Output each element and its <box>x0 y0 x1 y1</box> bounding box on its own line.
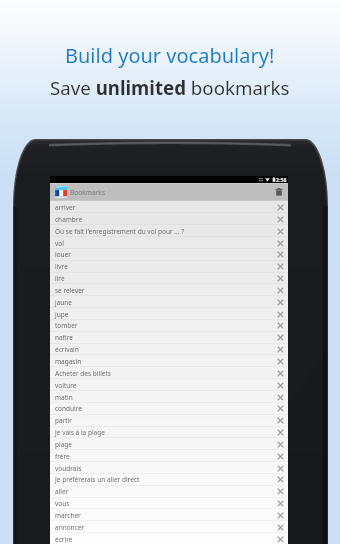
button[interactable]: Remove magasin <box>275 356 286 367</box>
staticText: voudrais <box>55 464 275 473</box>
button[interactable]: arriver <box>50 201 288 213</box>
staticText: écrire <box>55 535 275 544</box>
button[interactable]: Je préférerais un aller direct <box>50 473 288 485</box>
staticText: vol <box>55 239 275 248</box>
button[interactable]: Remove lire <box>275 273 286 284</box>
button[interactable]: annoncer <box>50 521 288 533</box>
staticText: conduire <box>55 404 275 413</box>
staticText: arriver <box>55 203 275 212</box>
button[interactable]: écrivain <box>50 343 288 355</box>
staticText: annoncer <box>55 523 275 532</box>
button[interactable]: vous <box>50 497 288 509</box>
staticText: lire <box>55 274 275 283</box>
button[interactable]: lire <box>50 272 288 284</box>
button[interactable]: Remove naître <box>275 332 286 343</box>
button[interactable]: Remove jaune <box>275 297 286 308</box>
staticText: jupe <box>55 310 275 319</box>
button[interactable]: Remove écrivain <box>275 344 286 355</box>
button[interactable]: Je vais à la plage <box>50 426 288 438</box>
staticText: plage <box>55 440 275 449</box>
staticText: matin <box>55 393 275 402</box>
button[interactable]: plage <box>50 438 288 450</box>
button[interactable]: aller <box>50 485 288 497</box>
button[interactable]: chambre <box>50 213 288 225</box>
staticText: Je vais à la plage <box>55 428 275 437</box>
button[interactable]: frère <box>50 450 288 462</box>
button[interactable]: Remove aller <box>275 486 286 497</box>
button[interactable]: voudrais <box>50 462 288 474</box>
button[interactable]: Remove chambre <box>275 214 286 225</box>
button[interactable]: livre <box>50 260 288 272</box>
staticText: livre <box>55 262 275 271</box>
button[interactable]: Delete all bookmarks <box>272 185 285 198</box>
button[interactable]: tomber <box>50 319 288 331</box>
button[interactable]: App icon <box>54 185 68 199</box>
staticText: Je préférerais un aller direct <box>55 475 275 484</box>
button[interactable]: Remove louer <box>275 249 286 260</box>
button[interactable]: Où se fait l'enregistrement du vol pour … <box>50 225 288 237</box>
button[interactable]: naître <box>50 331 288 343</box>
button[interactable]: Remove jupe <box>275 309 286 320</box>
button[interactable]: louer <box>50 248 288 260</box>
staticText: Acheter des billets <box>55 369 275 378</box>
button[interactable]: Remove livre <box>275 261 286 272</box>
button[interactable]: écrire <box>50 533 288 544</box>
button[interactable]: Remove Je préférerais un aller direct <box>275 474 286 485</box>
button[interactable]: Remove matin <box>275 392 286 403</box>
button[interactable]: Remove se relever <box>275 285 286 296</box>
button[interactable]: Remove annoncer <box>275 522 286 533</box>
button[interactable]: Remove vol <box>275 238 286 249</box>
staticText: marcher <box>55 511 275 520</box>
button[interactable]: conduire <box>50 402 288 414</box>
button[interactable]: Remove vous <box>275 498 286 509</box>
button[interactable]: Remove Je vais à la plage <box>275 427 286 438</box>
staticText: Où se fait l'enregistrement du vol pour … <box>55 227 275 236</box>
staticText: magasin <box>55 357 275 366</box>
staticText: Bookmarks <box>70 188 106 197</box>
button[interactable]: partir <box>50 414 288 426</box>
staticText: vous <box>55 499 275 508</box>
staticText: Save unlimited bookmarks <box>50 75 290 100</box>
button[interactable]: matin <box>50 391 288 403</box>
staticText: Build your vocabulary! <box>65 42 275 69</box>
staticText: se relever <box>55 286 275 295</box>
button[interactable]: vol <box>50 237 288 249</box>
button[interactable]: Remove Où se fait l'enregistrement du vo… <box>275 226 286 237</box>
staticText: aller <box>55 487 275 496</box>
button[interactable]: Remove frère <box>275 451 286 462</box>
button[interactable]: Acheter des billets <box>50 367 288 379</box>
button[interactable]: magasin <box>50 355 288 367</box>
button[interactable]: Remove conduire <box>275 403 286 414</box>
button[interactable]: Remove Acheter des billets <box>275 368 286 379</box>
button[interactable]: Remove marcher <box>275 510 286 521</box>
staticText: écrivain <box>55 345 275 354</box>
staticText: jaune <box>55 298 275 307</box>
button[interactable]: Remove partir <box>275 415 286 426</box>
button[interactable]: marcher <box>50 509 288 521</box>
button[interactable]: Remove voudrais <box>275 463 286 474</box>
button[interactable]: Remove arriver <box>275 202 286 213</box>
staticText: chambre <box>55 215 275 224</box>
staticText: naître <box>55 333 275 342</box>
staticText: partir <box>55 416 275 425</box>
staticText: tomber <box>55 321 275 330</box>
staticText: voiture <box>55 381 275 390</box>
button[interactable]: jaune <box>50 296 288 308</box>
button[interactable]: Remove tomber <box>275 320 286 331</box>
button[interactable]: se relever <box>50 284 288 296</box>
button[interactable]: voiture <box>50 379 288 391</box>
button[interactable]: Remove écrire <box>275 534 286 544</box>
button[interactable]: Remove voiture <box>275 380 286 391</box>
button[interactable]: Remove plage <box>275 439 286 450</box>
staticText: 2:58 <box>276 176 287 183</box>
button[interactable]: jupe <box>50 308 288 320</box>
staticText: frère <box>55 452 275 461</box>
staticText: louer <box>55 250 275 259</box>
